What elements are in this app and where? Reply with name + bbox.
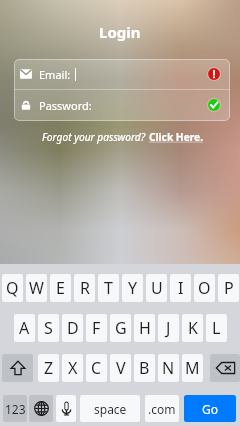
staticText: E — [56, 277, 65, 299]
staticText: M — [185, 357, 200, 379]
button[interactable]: L — [206, 314, 227, 342]
other: Shift — [11, 361, 25, 375]
button[interactable]: P — [218, 274, 239, 302]
button[interactable]: R — [74, 274, 95, 302]
staticText: Forgot your password? — [42, 130, 146, 144]
button[interactable]: I — [170, 274, 191, 302]
staticText: R — [80, 277, 90, 299]
button[interactable]: U — [146, 274, 167, 302]
button[interactable]: Go — [184, 395, 236, 422]
staticText: C — [91, 357, 102, 379]
staticText: P — [224, 277, 234, 299]
staticText: L — [212, 317, 221, 339]
button[interactable]: J — [158, 314, 179, 342]
button[interactable]: Q — [2, 274, 23, 302]
button[interactable]: E — [50, 274, 71, 302]
staticText: S — [44, 317, 53, 339]
button[interactable]: T — [98, 274, 119, 302]
staticText: Y — [128, 277, 138, 299]
staticText: O — [198, 277, 211, 299]
button[interactable]: D — [62, 314, 83, 342]
button[interactable]: G — [110, 314, 131, 342]
other: Change keyboard — [34, 401, 49, 416]
other: Backspace — [216, 362, 235, 374]
staticText: space — [94, 401, 127, 417]
button[interactable]: H — [134, 314, 155, 342]
button[interactable]: Y — [122, 274, 143, 302]
staticText: 123 — [5, 401, 26, 417]
button[interactable]: O — [194, 274, 215, 302]
other: Voice input — [62, 401, 71, 416]
staticText: Z — [44, 357, 54, 379]
button[interactable]: W — [26, 274, 47, 302]
button[interactable]: Change keyboard — [29, 395, 53, 422]
staticText: Login — [99, 22, 141, 42]
staticText: A — [19, 317, 30, 339]
button[interactable]: Password: — [14, 90, 230, 120]
button[interactable]: K — [182, 314, 203, 342]
button[interactable]: Shift — [2, 354, 33, 382]
staticText: Click Here. — [149, 130, 204, 144]
staticText: U — [151, 277, 163, 299]
button[interactable]: Forgot your password? — [42, 130, 204, 144]
staticText: T — [104, 277, 113, 299]
button[interactable]: C — [86, 354, 107, 382]
staticText: Password: — [39, 98, 92, 113]
button[interactable]: .com — [145, 395, 179, 422]
button[interactable]: space — [80, 395, 140, 422]
staticText: W — [29, 277, 44, 299]
button[interactable]: B — [134, 354, 155, 382]
staticText: I — [178, 277, 184, 299]
staticText: F — [92, 317, 101, 339]
button[interactable]: Backspace — [210, 354, 240, 382]
staticText: K — [188, 317, 198, 339]
button[interactable]: S — [38, 314, 59, 342]
button[interactable]: M — [182, 354, 203, 382]
staticText: H — [139, 317, 151, 339]
button[interactable]: N — [158, 354, 179, 382]
staticText: B — [139, 357, 150, 379]
button[interactable]: Voice input — [56, 395, 76, 422]
button[interactable]: V — [110, 354, 131, 382]
staticText: Email: — [39, 67, 71, 82]
button[interactable]: 123 — [3, 395, 27, 422]
staticText: J — [166, 317, 171, 339]
button[interactable]: Z — [38, 354, 59, 382]
staticText: V — [116, 357, 126, 379]
button[interactable]: X — [62, 354, 83, 382]
staticText: D — [67, 317, 79, 339]
button[interactable]: Email: — [14, 59, 230, 89]
button[interactable]: F — [86, 314, 107, 342]
staticText: X — [68, 357, 78, 379]
staticText: G — [115, 317, 127, 339]
staticText: Q — [6, 277, 19, 299]
button[interactable]: A — [14, 314, 35, 342]
staticText: Go — [202, 401, 218, 417]
staticText: N — [162, 357, 175, 379]
staticText: .com — [148, 401, 176, 417]
